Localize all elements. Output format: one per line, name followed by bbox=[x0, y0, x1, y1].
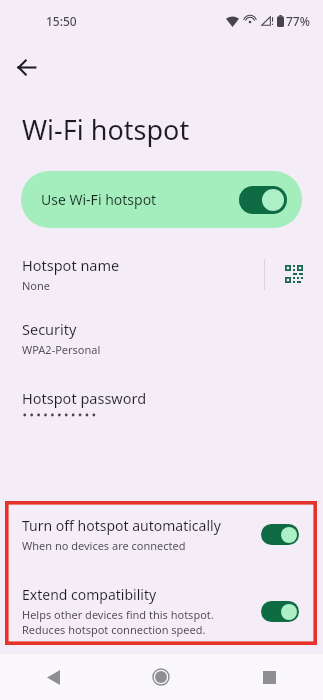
button[interactable]: Hotspot password bbox=[0, 385, 323, 427]
button[interactable]: Turn off hotspot automatically bbox=[261, 524, 299, 545]
staticText: Extend compatibility bbox=[22, 585, 157, 604]
staticText: 77% bbox=[286, 13, 310, 29]
staticText: Hotspot name bbox=[22, 255, 120, 275]
button[interactable]: Back bbox=[0, 654, 107, 700]
button[interactable]: Hotspot name bbox=[0, 248, 264, 300]
button[interactable]: Back bbox=[6, 47, 46, 87]
staticText: 15:50 bbox=[46, 13, 77, 29]
button[interactable]: Share hotspot QR code bbox=[265, 248, 323, 300]
button[interactable]: Use Wi-Fi hotspot bbox=[239, 186, 287, 214]
staticText: Wi-Fi hotspot bbox=[22, 111, 190, 148]
staticText: When no devices are connected bbox=[22, 538, 186, 553]
staticText: Security bbox=[22, 319, 77, 339]
staticText: Helps other devices find this hotspot. bbox=[22, 607, 214, 622]
button[interactable]: Extend compatibility bbox=[5, 585, 317, 637]
button[interactable]: Recent apps bbox=[215, 654, 323, 700]
button[interactable]: Extend compatibility bbox=[261, 601, 299, 622]
staticText: Hotspot password bbox=[22, 388, 147, 408]
button[interactable]: Use Wi-Fi hotspot bbox=[21, 171, 302, 228]
button[interactable]: Security bbox=[0, 316, 323, 363]
staticText: Turn off hotspot automatically bbox=[22, 516, 221, 535]
staticText: Reduces hotspot connection speed. bbox=[22, 622, 206, 637]
button[interactable]: Turn off hotspot automatically bbox=[5, 516, 317, 553]
staticText: None bbox=[22, 278, 51, 293]
staticText: Use Wi-Fi hotspot bbox=[41, 190, 239, 209]
staticText: WPA2-Personal bbox=[22, 342, 101, 357]
button[interactable]: Home bbox=[107, 654, 215, 700]
